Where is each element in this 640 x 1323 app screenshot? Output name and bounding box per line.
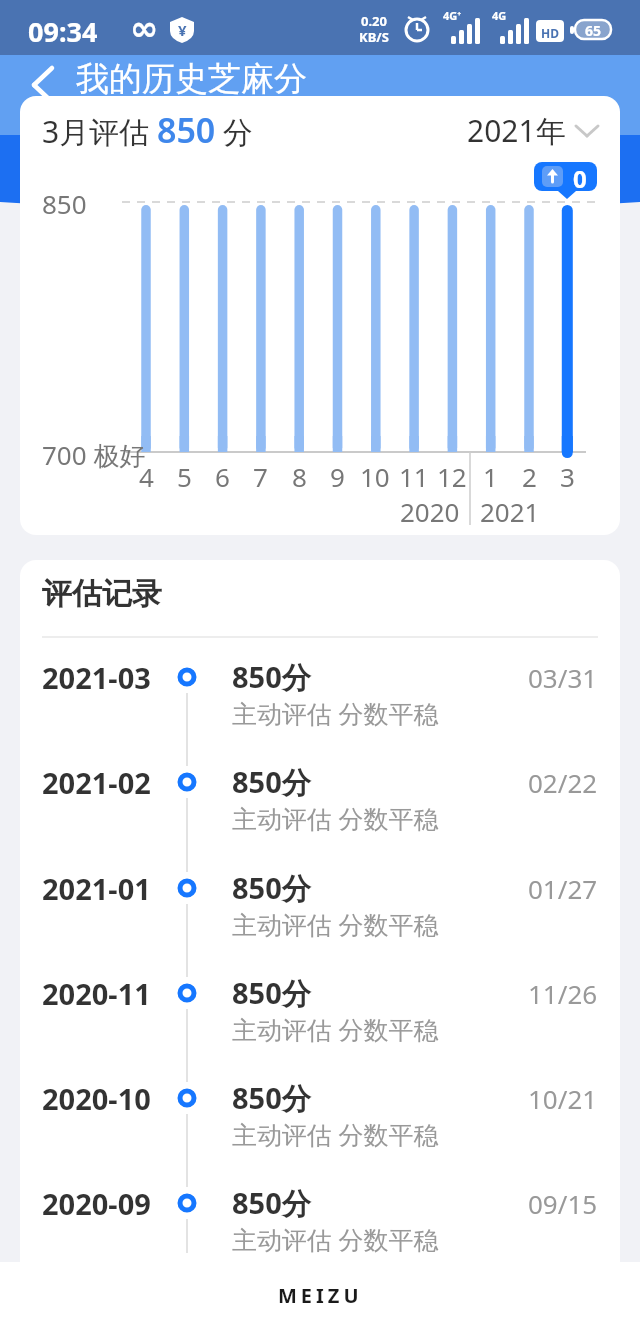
staticText: MEIZU — [278, 1282, 363, 1309]
staticText: 主动评估 分数平稳 — [232, 907, 439, 941]
staticText: 主动评估 分数平稳 — [232, 1222, 439, 1256]
staticText: 850分 — [232, 657, 311, 697]
staticText: 02/22 — [528, 765, 598, 800]
staticText: 6 — [215, 459, 230, 491]
staticText: 4 — [139, 459, 154, 491]
staticText: 主动评估 分数平稳 — [232, 696, 439, 730]
staticText: 700 极好 — [42, 437, 146, 469]
staticText: 2 — [522, 459, 537, 491]
staticText: 850分 — [232, 973, 311, 1013]
staticText: 0.20 — [361, 12, 387, 27]
staticText: 4G⁺ — [443, 8, 462, 22]
button[interactable] — [20, 941, 620, 1045]
button[interactable] — [20, 836, 620, 940]
staticText: 850分 — [232, 1183, 311, 1223]
button[interactable] — [20, 1046, 620, 1150]
staticText: 65 — [585, 21, 602, 39]
staticText: 09:34 — [28, 13, 98, 43]
staticText: 2021 — [480, 494, 540, 526]
staticText: 评估记录 — [42, 575, 162, 613]
staticText: 850分 — [232, 762, 311, 802]
staticText: 1 — [483, 459, 498, 491]
staticText: 5 — [177, 459, 192, 491]
button[interactable] — [20, 625, 620, 729]
staticText: 4G — [492, 8, 507, 22]
staticText: 2021-01 — [42, 869, 151, 908]
staticText: 2021-02 — [42, 763, 151, 802]
button[interactable]: 2021年 — [460, 106, 600, 154]
staticText: 10 — [360, 459, 390, 491]
staticText: HD — [541, 25, 559, 41]
staticText: 850分 — [232, 868, 311, 908]
staticText: 7 — [253, 459, 268, 491]
staticText: 2020-11 — [42, 974, 151, 1013]
staticText: 09/15 — [528, 1186, 598, 1221]
staticText: 850 — [42, 186, 87, 218]
staticText: ∞ — [130, 8, 159, 46]
button[interactable] — [30, 66, 56, 104]
staticText: 03/31 — [528, 660, 598, 695]
staticText: 11 — [399, 459, 429, 491]
staticText: 我的历史芝麻分 — [76, 58, 307, 100]
staticText: 8 — [292, 459, 307, 491]
staticText: 3 — [560, 459, 575, 491]
staticText: KB/S — [359, 28, 389, 43]
staticText: 12 — [437, 459, 467, 491]
staticText: ¥ — [178, 20, 187, 40]
staticText: 850分 — [232, 1078, 311, 1118]
button[interactable] — [20, 1151, 620, 1255]
staticText: 2020 — [400, 494, 460, 526]
staticText: 2021年 — [467, 110, 566, 151]
staticText: 主动评估 分数平稳 — [232, 1012, 439, 1046]
staticText: 2021-03 — [42, 658, 151, 697]
staticText: 主动评估 分数平稳 — [232, 1117, 439, 1151]
staticText: 10/21 — [528, 1081, 598, 1116]
staticText: 9 — [330, 459, 345, 491]
staticText: 2020-10 — [42, 1079, 151, 1118]
button[interactable] — [20, 730, 620, 834]
staticText: 0 — [573, 162, 587, 191]
staticText: 2020-09 — [42, 1184, 151, 1223]
staticText: 主动评估 分数平稳 — [232, 801, 439, 835]
staticText: 3月评估 850 分 — [42, 107, 254, 153]
staticText: 01/27 — [528, 871, 598, 906]
staticText: 11/26 — [528, 976, 598, 1011]
